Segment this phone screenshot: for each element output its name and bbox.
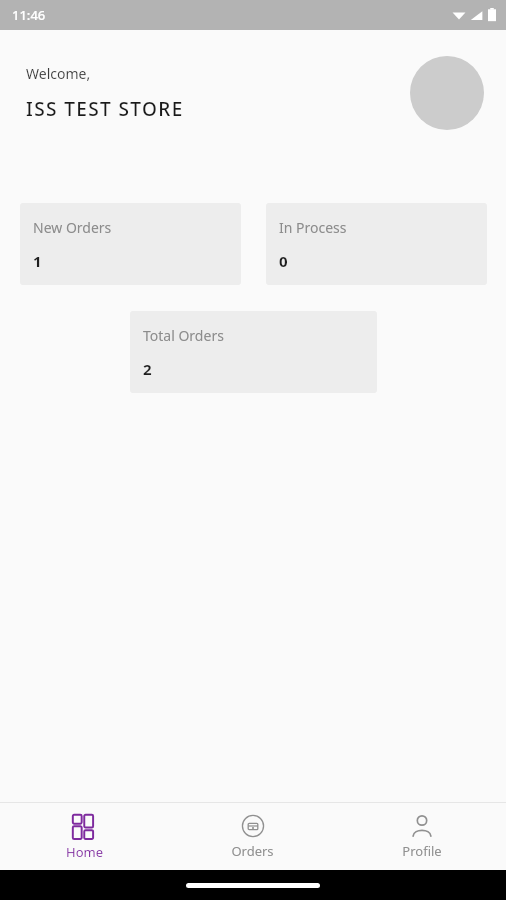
staticText: In Process [279,218,347,237]
staticText: New Orders [33,218,112,237]
staticText: 2 [143,359,152,379]
staticText: Profile [402,842,442,860]
button[interactable]: Profile [337,803,506,870]
button[interactable]: Profile photo [410,56,484,130]
button[interactable]: Home [0,803,168,870]
button[interactable]: New Orders [20,203,241,285]
staticText: ISS TEST STORE [26,96,184,122]
staticText: Orders [231,842,274,860]
staticText: 11:46 [12,6,46,24]
staticText: 1 [33,251,42,271]
button[interactable]: Total Orders [130,311,377,393]
button[interactable]: Orders [168,803,337,870]
staticText: 0 [279,251,288,271]
staticText: Welcome, [26,64,91,83]
button[interactable]: In Process [266,203,487,285]
staticText: Home [66,843,103,861]
staticText: Total Orders [143,326,224,345]
